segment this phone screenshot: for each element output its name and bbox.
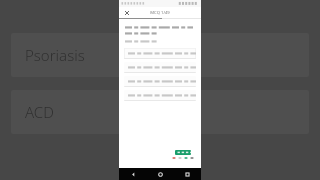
button[interactable] bbox=[119, 46, 201, 60]
button[interactable] bbox=[119, 88, 201, 102]
staticText: Psoriasis bbox=[25, 45, 85, 65]
button[interactable]: Edit bbox=[178, 156, 182, 160]
button[interactable]: Remove bbox=[172, 156, 176, 160]
button[interactable] bbox=[175, 150, 191, 155]
button[interactable]: Home bbox=[147, 168, 174, 180]
button[interactable]: Confirm bbox=[184, 156, 188, 160]
button[interactable]: ACD bbox=[11, 90, 309, 134]
button[interactable] bbox=[119, 74, 201, 88]
staticText: ACD bbox=[25, 102, 54, 122]
button[interactable]: Close bbox=[122, 8, 131, 17]
button[interactable]: More bbox=[190, 156, 194, 160]
button[interactable]: Recents bbox=[174, 168, 201, 180]
button[interactable] bbox=[119, 60, 201, 74]
button[interactable]: Psoriasis bbox=[11, 33, 309, 77]
staticText: MCQ 1/49 bbox=[150, 10, 170, 16]
button[interactable]: Back bbox=[119, 168, 147, 180]
